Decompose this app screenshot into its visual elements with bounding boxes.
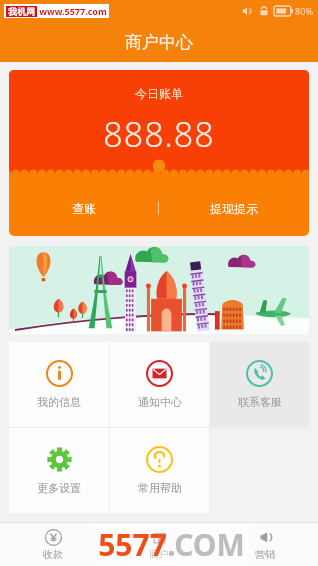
button[interactable]: 联系客服 bbox=[210, 342, 309, 427]
button[interactable]: 通知中心 bbox=[110, 342, 209, 427]
staticText: 营销 bbox=[255, 548, 275, 561]
staticText: .COM bbox=[167, 524, 245, 565]
staticText: 提现提示 bbox=[210, 201, 258, 216]
staticText: 888.88 bbox=[103, 111, 215, 157]
staticText: 常用帮助 bbox=[138, 481, 182, 495]
button[interactable]: 我的信息 bbox=[9, 342, 109, 427]
staticText: 今日账单 bbox=[135, 86, 183, 101]
staticText: 收款 bbox=[43, 548, 63, 561]
staticText: www.5577.com bbox=[39, 5, 107, 17]
button[interactable]: 常用帮助 bbox=[110, 428, 209, 513]
button[interactable]: 商户 bbox=[106, 523, 212, 566]
staticText: 5577 bbox=[98, 524, 167, 565]
staticText: 我机网 bbox=[8, 6, 35, 17]
button[interactable] bbox=[9, 246, 309, 334]
button[interactable]: 查账 bbox=[9, 180, 158, 236]
staticText: 联系客服 bbox=[238, 395, 282, 409]
staticText: 商户中心 bbox=[125, 32, 193, 53]
button[interactable]: 营销 bbox=[212, 523, 318, 566]
staticText: 查账 bbox=[72, 201, 96, 216]
button[interactable]: 更多设置 bbox=[9, 428, 109, 513]
staticText: 商户 bbox=[149, 548, 169, 561]
button[interactable]: 提现提示 bbox=[159, 180, 309, 236]
button[interactable]: 收款 bbox=[0, 523, 106, 566]
staticText: 80% bbox=[295, 5, 313, 17]
staticText: 通知中心 bbox=[138, 395, 182, 409]
staticText: 我的信息 bbox=[37, 395, 81, 409]
staticText: 更多设置 bbox=[37, 481, 81, 495]
